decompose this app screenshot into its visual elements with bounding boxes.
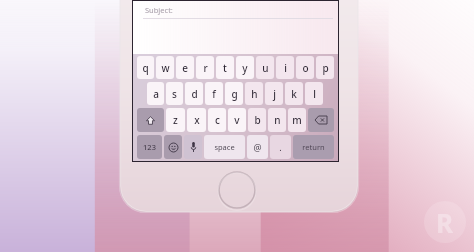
button[interactable]: Delete	[308, 108, 334, 132]
staticText: R	[436, 205, 454, 240]
staticText: k	[291, 87, 297, 101]
staticText: j	[273, 87, 276, 101]
staticText: i	[284, 61, 287, 75]
staticText: a	[153, 87, 159, 101]
staticText: t	[223, 61, 227, 75]
button[interactable]: .	[270, 135, 291, 159]
staticText: n	[274, 113, 281, 127]
button[interactable]: d	[185, 82, 203, 105]
button[interactable]: z	[166, 108, 185, 132]
button[interactable]: k	[285, 82, 303, 105]
staticText: m	[292, 113, 302, 127]
button[interactable]: Emoji	[164, 135, 182, 159]
button[interactable]: Dictate	[184, 135, 202, 159]
staticText: r	[203, 61, 208, 75]
staticText: @	[253, 141, 262, 153]
staticText: l	[313, 87, 316, 101]
button[interactable]: m	[288, 108, 306, 132]
staticText: space	[214, 142, 235, 152]
staticText: 123	[143, 142, 156, 152]
button[interactable]: o	[296, 56, 314, 79]
button[interactable]: w	[156, 56, 174, 79]
staticText: g	[231, 87, 238, 101]
button[interactable]: Shift	[137, 108, 164, 132]
button[interactable]: r	[196, 56, 214, 79]
staticText: o	[302, 61, 309, 75]
staticText: q	[142, 61, 149, 75]
button[interactable]: f	[205, 82, 223, 105]
staticText: c	[215, 113, 220, 127]
button[interactable]: y	[236, 56, 254, 79]
staticText: .	[279, 141, 282, 153]
button[interactable]: t	[216, 56, 234, 79]
staticText: w	[161, 61, 170, 75]
button[interactable]: g	[225, 82, 243, 105]
staticText: s	[172, 87, 177, 101]
button[interactable]: x	[187, 108, 206, 132]
staticText: y	[242, 61, 248, 75]
staticText: Subject:	[145, 5, 173, 15]
button[interactable]: a	[147, 82, 164, 105]
button[interactable]: return	[293, 135, 334, 159]
button[interactable]: u	[256, 56, 274, 79]
button[interactable]: 123	[137, 135, 162, 159]
staticText: d	[191, 87, 198, 101]
button[interactable]: space	[204, 135, 245, 159]
button[interactable]: c	[208, 108, 226, 132]
staticText: u	[262, 61, 269, 75]
button[interactable]: l	[305, 82, 323, 105]
button[interactable]: q	[137, 56, 154, 79]
staticText: e	[182, 61, 188, 75]
staticText: return	[302, 142, 325, 152]
staticText: p	[322, 61, 329, 75]
button[interactable]: i	[276, 56, 294, 79]
button[interactable]: n	[268, 108, 286, 132]
button[interactable]: b	[248, 108, 266, 132]
button[interactable]: @	[247, 135, 268, 159]
staticText: v	[234, 113, 240, 127]
staticText: b	[254, 113, 261, 127]
button[interactable]: p	[316, 56, 334, 79]
button[interactable]: h	[245, 82, 263, 105]
staticText: f	[212, 87, 216, 101]
button[interactable]: e	[176, 56, 194, 79]
staticText: h	[251, 87, 258, 101]
button[interactable]: s	[166, 82, 183, 105]
staticText: z	[173, 113, 178, 127]
button[interactable]: v	[228, 108, 246, 132]
staticText: x	[194, 113, 200, 127]
button[interactable]: j	[265, 82, 283, 105]
